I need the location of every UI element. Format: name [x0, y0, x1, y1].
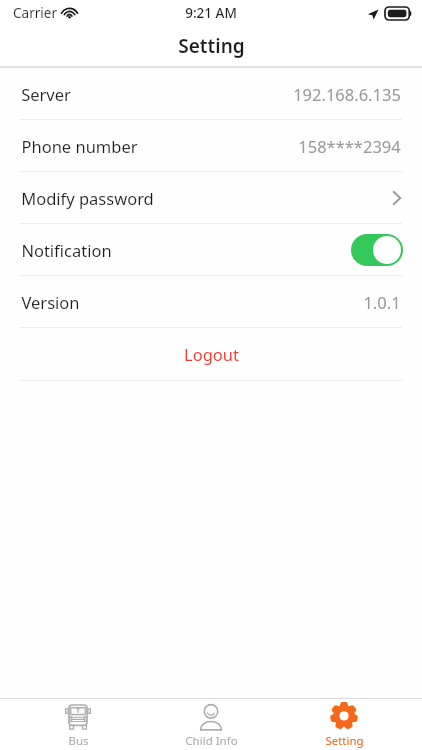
button[interactable]: Modify password — [0, 172, 422, 223]
staticText: 9:21 AM — [185, 4, 237, 22]
button[interactable]: Logout — [0, 328, 422, 380]
button[interactable]: Phone number — [0, 120, 422, 171]
staticText: Modify password — [21, 187, 154, 209]
button[interactable]: Version — [0, 276, 422, 327]
button[interactable]: Bus — [23, 700, 133, 749]
staticText: Version — [21, 291, 80, 313]
staticText: Setting — [178, 33, 245, 59]
button[interactable]: Notification toggle, on — [351, 234, 403, 266]
staticText: Notification — [21, 239, 112, 261]
staticText: Phone number — [21, 135, 138, 157]
staticText: 158****2394 — [298, 135, 401, 157]
staticText: Carrier — [13, 4, 57, 22]
button[interactable]: Child Info — [156, 700, 266, 749]
staticText: Server — [21, 83, 71, 105]
staticText: Bus — [68, 733, 89, 749]
staticText: 192.168.6.135 — [293, 83, 401, 105]
button[interactable]: Server — [0, 68, 422, 119]
staticText: Logout — [184, 343, 239, 365]
staticText: Setting — [325, 733, 364, 749]
staticText: Child Info — [185, 733, 238, 749]
staticText: 1.0.1 — [363, 291, 401, 313]
button[interactable]: Setting — [289, 700, 399, 749]
